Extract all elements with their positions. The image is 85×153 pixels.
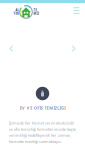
staticText: TIN: [14, 12, 19, 15]
button[interactable]: Önceki: [5, 41, 17, 56]
button[interactable]: Sonraki: [67, 41, 80, 56]
staticText: MİZ: [33, 12, 39, 15]
staticText: AL: [16, 8, 19, 12]
button[interactable]: Ana sayfa: [12, 3, 41, 21]
staticText: İşimizde her hizmet veren eksiksizdir ve…: [9, 120, 76, 144]
staticText: EV VE OFİS TEMİZLİĞİ: [20, 105, 65, 111]
staticText: TE: [33, 8, 36, 12]
button[interactable]: Menü: [69, 3, 83, 18]
